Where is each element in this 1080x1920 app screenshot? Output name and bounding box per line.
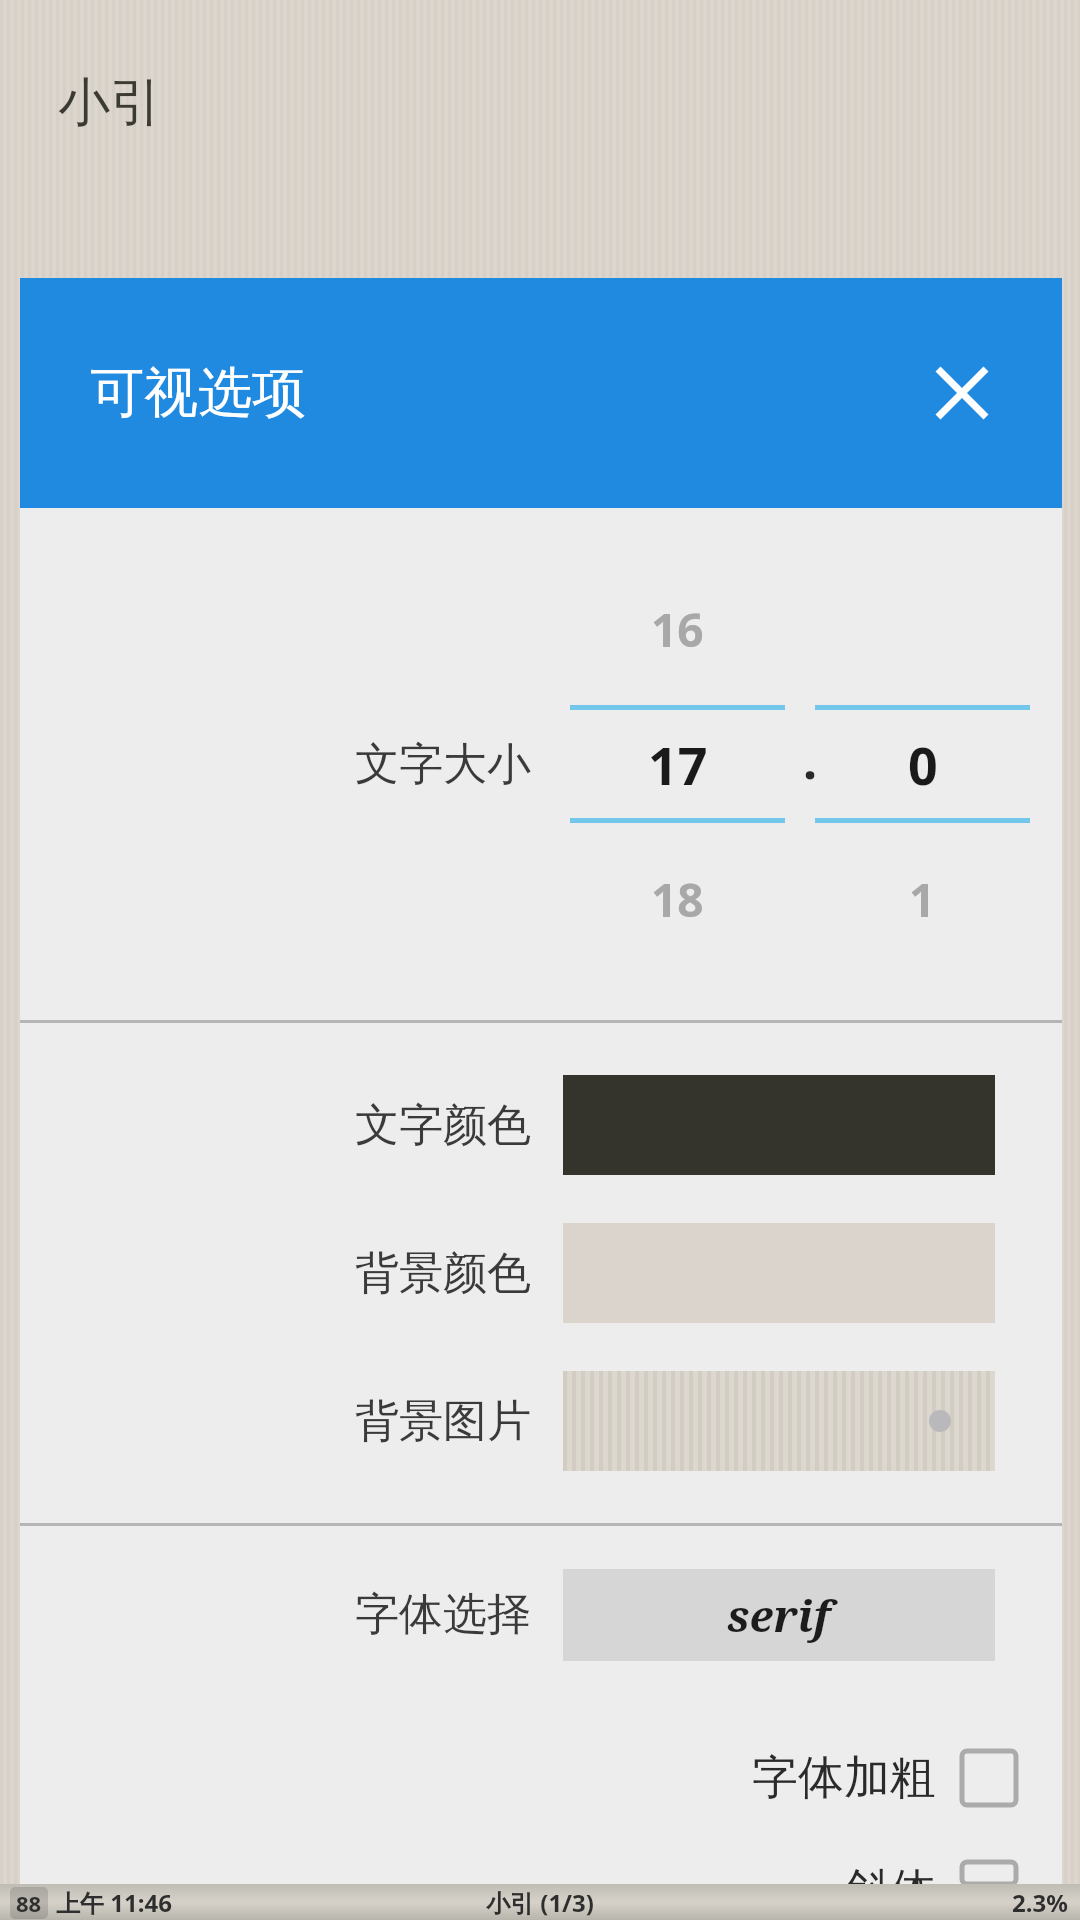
staticText: 字体加粗 (752, 1749, 936, 1807)
button[interactable]: 背景颜色 (20, 1223, 1062, 1323)
staticText: 文字大小 (355, 737, 531, 792)
button[interactable]: 文字颜色 (20, 1075, 1062, 1175)
staticText: 背景图片 (355, 1394, 531, 1449)
staticText: 小引 (58, 70, 162, 136)
staticText: 文字颜色 (355, 1098, 531, 1153)
button[interactable]: 16 (570, 508, 785, 1020)
staticText: 18 (651, 868, 704, 931)
staticText: 可视选项 (90, 359, 306, 427)
staticText: 背景颜色 (355, 1246, 531, 1301)
staticText: 16 (651, 598, 704, 661)
staticText: 斜体 (844, 1862, 936, 1884)
staticText: 88 (16, 1888, 42, 1918)
button[interactable]: 背景图片 (20, 1371, 1062, 1471)
button[interactable]: 0 (815, 508, 1030, 1020)
staticText: serif (727, 1585, 831, 1645)
staticText: 0 (908, 729, 938, 800)
button[interactable]: 斜体 (20, 1862, 1062, 1884)
staticText: 上午 11:46 (56, 1886, 172, 1919)
button[interactable]: serif (563, 1569, 995, 1661)
staticText: . (785, 726, 835, 794)
button[interactable]: Close (922, 353, 1002, 433)
staticText: 字体选择 (355, 1587, 531, 1642)
button[interactable]: 字体加粗 (20, 1725, 1062, 1830)
staticText: 1 (909, 868, 936, 931)
staticText: 小引 (1/3) (486, 1886, 594, 1919)
staticText: 2.3% (1012, 1886, 1068, 1919)
staticText: 17 (648, 729, 708, 800)
